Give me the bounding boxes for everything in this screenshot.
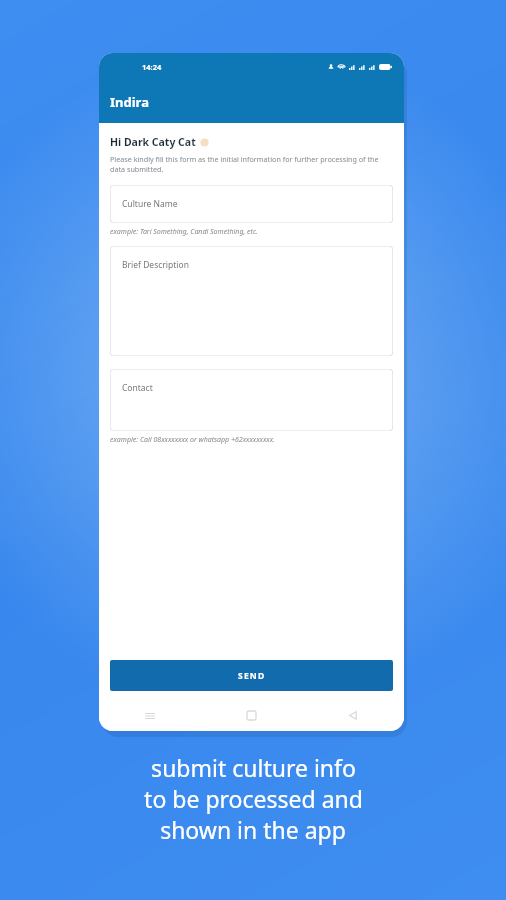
staticText: Brief Description <box>122 259 189 271</box>
staticText: Contact <box>122 382 153 394</box>
staticText: Please kindly fill this form as the init… <box>110 154 393 174</box>
button[interactable]: Back <box>302 700 404 731</box>
staticText: Hi Dark Caty Cat <box>110 135 196 149</box>
staticText: example: Call 08xxxxxxxx or whatsapp +62… <box>110 435 275 445</box>
button[interactable]: Brief Description <box>110 246 393 356</box>
staticText: SEND <box>238 670 266 682</box>
button[interactable]: SEND <box>110 660 393 691</box>
button[interactable]: Culture Name <box>110 185 393 223</box>
staticText: submit culture info <box>151 752 356 783</box>
button[interactable]: Contact <box>110 369 393 431</box>
staticText: example: Tari Something, Candi Something… <box>110 227 258 237</box>
staticText: to be processed and <box>144 783 363 814</box>
staticText: Indira <box>110 93 149 111</box>
button[interactable]: Home <box>200 700 302 731</box>
staticText: Culture Name <box>122 198 178 210</box>
staticText: 14:24 <box>142 62 162 72</box>
button[interactable]: Recent apps <box>99 700 200 731</box>
staticText: shown in the app <box>160 814 346 845</box>
